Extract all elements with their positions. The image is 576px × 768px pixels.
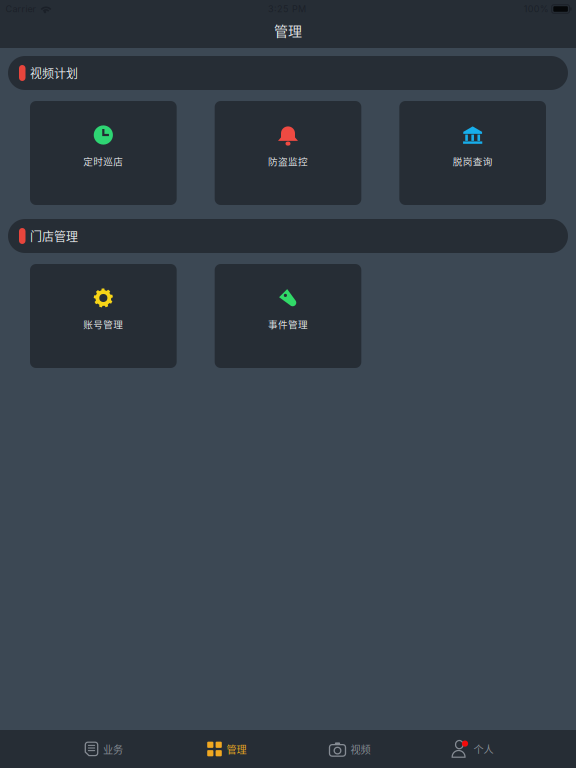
button[interactable]: 个人 <box>411 730 534 768</box>
staticText: 3:25 PM <box>268 3 306 14</box>
staticText: Carrier <box>5 3 35 14</box>
staticText: 管理 <box>226 742 246 756</box>
button[interactable]: 防盗监控 <box>215 101 361 205</box>
staticText: 定时巡店 <box>83 154 123 168</box>
staticText: 管理 <box>274 20 302 41</box>
button[interactable]: 事件管理 <box>215 264 361 368</box>
staticText: 视频计划 <box>30 64 78 82</box>
staticText: 账号管理 <box>83 317 123 331</box>
button[interactable]: 管理 <box>165 730 288 768</box>
staticText: 视频 <box>350 742 370 756</box>
staticText: 100% <box>524 3 549 14</box>
staticText: 脱岗查询 <box>453 154 493 168</box>
button[interactable]: 业务 <box>42 730 165 768</box>
staticText: 防盗监控 <box>268 154 308 168</box>
staticText: 业务 <box>103 742 123 756</box>
staticText: 个人 <box>473 742 493 756</box>
staticText: 事件管理 <box>268 317 308 331</box>
button[interactable]: 视频 <box>288 730 411 768</box>
button[interactable]: 脱岗查询 <box>399 101 546 205</box>
button[interactable]: 定时巡店 <box>30 101 177 205</box>
button[interactable]: 账号管理 <box>30 264 177 368</box>
staticText: 门店管理 <box>30 227 78 245</box>
